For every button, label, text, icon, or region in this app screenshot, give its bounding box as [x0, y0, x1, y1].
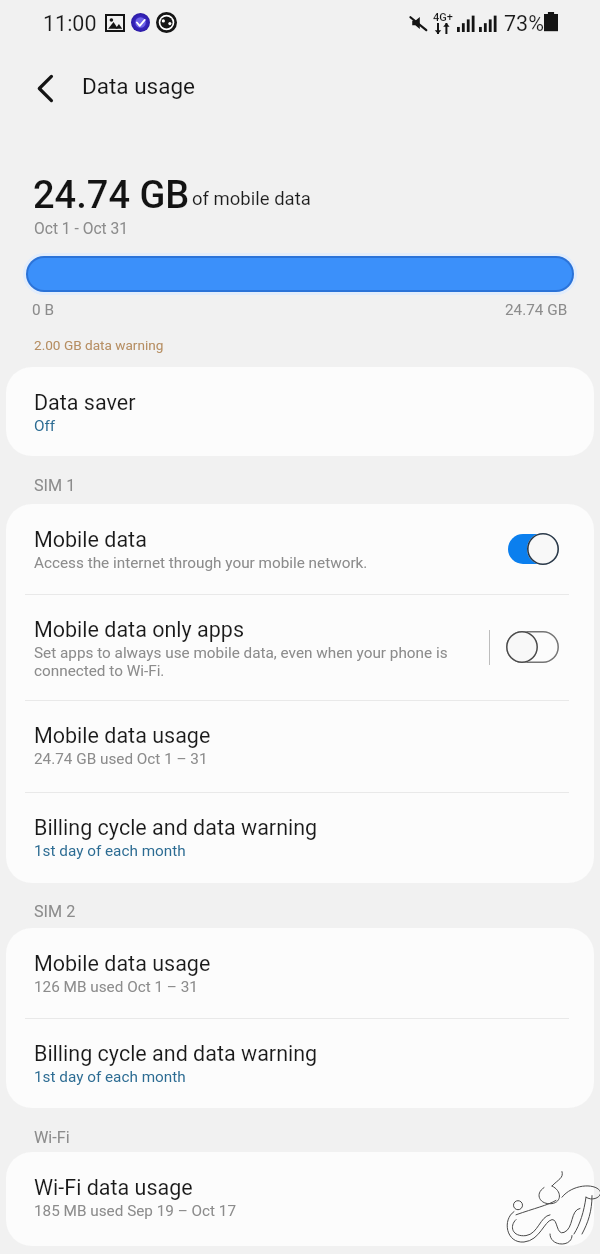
button[interactable]: Wi-Fi data usage	[6, 1152, 594, 1246]
staticText: 0 B	[32, 301, 54, 319]
staticText: Mobile data usage	[34, 951, 211, 976]
button[interactable]: Data saver	[6, 367, 594, 456]
button[interactable]: Turn off mobile data	[506, 532, 560, 566]
staticText: 1st day of each month	[34, 842, 186, 860]
staticText: Mobile data only apps	[34, 617, 244, 642]
button[interactable]: Mobile data usage	[6, 700, 594, 792]
staticText: 24.74 GB	[33, 173, 190, 218]
staticText: Wi-Fi data usage	[34, 1175, 193, 1200]
staticText: Data usage	[82, 73, 196, 99]
button[interactable]: Mobile data only apps	[6, 594, 594, 700]
staticText: Billing cycle and data warning	[34, 1041, 318, 1066]
staticText: 185 MB used Sep 19 – Oct 17	[34, 1202, 237, 1220]
staticText: Access the internet through your mobile …	[34, 554, 368, 572]
staticText: 2.00 GB data warning	[34, 337, 164, 353]
staticText: 11:00	[43, 11, 97, 36]
staticText: SIM 1	[34, 476, 76, 495]
staticText: 4G+	[433, 11, 453, 24]
button[interactable]: Mobile data usage	[6, 928, 594, 1018]
staticText: Billing cycle and data warning	[34, 815, 318, 840]
staticText: 1st day of each month	[34, 1068, 186, 1086]
staticText: SIM 2	[34, 902, 76, 921]
staticText: 73%	[504, 11, 544, 36]
staticText: Data saver	[34, 390, 136, 415]
staticText: Off	[34, 417, 56, 435]
staticText: 24.74 GB used Oct 1 – 31	[34, 750, 208, 768]
staticText: Oct 1 - Oct 31	[34, 220, 129, 238]
staticText: 126 MB used Oct 1 – 31	[34, 978, 198, 996]
staticText: Wi-Fi	[34, 1128, 70, 1147]
button[interactable]: Billing cycle and data warning	[6, 792, 594, 883]
staticText: Mobile data usage	[34, 723, 211, 748]
button[interactable]: Billing cycle and data warning	[6, 1018, 594, 1108]
button[interactable]: Mobile data	[6, 504, 594, 594]
button[interactable]: Back	[26, 69, 64, 107]
staticText: of mobile data	[192, 188, 311, 210]
staticText: Set apps to always use mobile data, even…	[34, 644, 448, 680]
staticText: Mobile data	[34, 527, 147, 552]
staticText: 24.74 GB	[505, 301, 568, 319]
button[interactable]: Turn on	[506, 630, 560, 664]
